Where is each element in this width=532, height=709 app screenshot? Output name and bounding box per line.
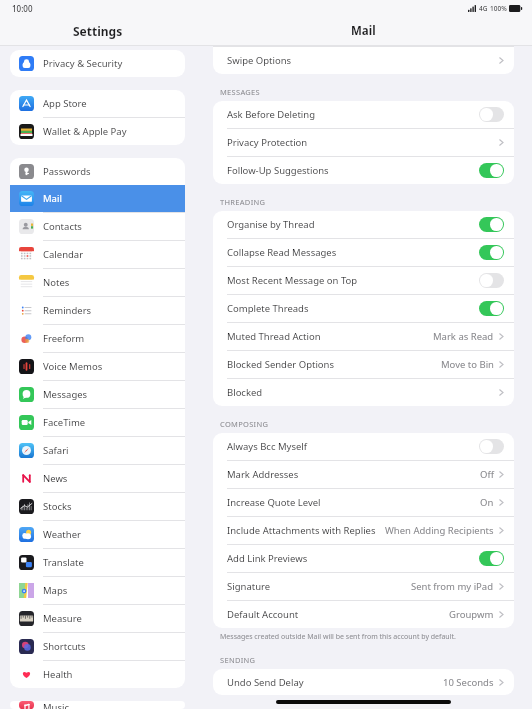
staticText: MESSAGES <box>220 87 260 97</box>
button[interactable]: Mark Addresses <box>213 461 514 488</box>
button[interactable]: News <box>10 465 185 492</box>
staticText: Passwords <box>43 165 91 178</box>
staticText: Organise by Thread <box>227 218 315 231</box>
staticText: Maps <box>43 584 68 597</box>
staticText: App Store <box>43 97 87 110</box>
button[interactable]: Reminders <box>10 297 185 324</box>
staticText: 4G <box>479 4 488 13</box>
button[interactable]: Organise by Thread <box>213 211 514 238</box>
button[interactable]: Mail <box>10 185 185 212</box>
button[interactable]: Add Link Previews <box>213 545 514 572</box>
button[interactable]: Off <box>479 273 504 288</box>
button[interactable]: Maps <box>10 577 185 604</box>
button[interactable]: Notes <box>10 269 185 296</box>
staticText: News <box>43 472 68 485</box>
staticText: Ask Before Deleting <box>227 108 315 121</box>
button[interactable]: Stocks <box>10 493 185 520</box>
staticText: Most Recent Message on Top <box>227 274 358 287</box>
button[interactable]: Collapse Read Messages <box>213 239 514 266</box>
staticText: Freeform <box>43 332 85 345</box>
button[interactable]: On <box>479 217 504 232</box>
staticText: Health <box>43 668 73 681</box>
button[interactable]: Default Account <box>213 601 514 628</box>
staticText: Voice Memos <box>43 360 103 373</box>
staticText: Wallet & Apple Pay <box>43 125 127 138</box>
button[interactable]: Wallet & Apple Pay <box>10 118 185 145</box>
staticText: Messages <box>43 388 88 401</box>
button[interactable]: Blocked <box>213 379 514 406</box>
staticText: Music <box>43 701 70 709</box>
staticText: Blocked Sender Options <box>227 358 335 371</box>
staticText: Swipe Options <box>227 54 292 67</box>
button[interactable]: On <box>479 163 504 178</box>
button[interactable]: Voice Memos <box>10 353 185 380</box>
button[interactable]: Off <box>479 107 504 122</box>
staticText: Mark Addresses <box>227 468 299 481</box>
button[interactable]: Include Attachments with Replies <box>213 517 514 544</box>
staticText: Shortcuts <box>43 640 86 653</box>
button[interactable]: Passwords <box>10 158 185 185</box>
button[interactable]: Safari <box>10 437 185 464</box>
button[interactable]: Most Recent Message on Top <box>213 267 514 294</box>
staticText: FaceTime <box>43 416 86 429</box>
staticText: Add Link Previews <box>227 552 308 565</box>
button[interactable]: Swipe Options <box>213 47 514 74</box>
button[interactable]: Shortcuts <box>10 633 185 660</box>
staticText: Settings <box>73 23 123 39</box>
button[interactable]: Signature <box>213 573 514 600</box>
button[interactable]: Freeform <box>10 325 185 352</box>
staticText: Mail <box>351 23 376 39</box>
staticText: When Adding Recipients <box>385 524 494 537</box>
button[interactable]: Contacts <box>10 213 185 240</box>
button[interactable]: On <box>479 245 504 260</box>
staticText: Collapse Read Messages <box>227 246 337 259</box>
staticText: Mail <box>43 192 62 205</box>
button[interactable]: Ask Before Deleting <box>213 101 514 128</box>
staticText: Translate <box>43 556 84 569</box>
staticText: Off <box>480 468 494 481</box>
button[interactable]: Always Bcc Myself <box>213 433 514 460</box>
staticText: Undo Send Delay <box>227 676 304 689</box>
staticText: 10:00 <box>12 3 33 14</box>
button[interactable]: Follow-Up Suggestions <box>213 157 514 184</box>
button[interactable]: Blocked Sender Options <box>213 351 514 378</box>
staticText: COMPOSING <box>220 419 269 429</box>
button[interactable]: Privacy & Security <box>10 50 185 77</box>
button[interactable]: Messages <box>10 381 185 408</box>
button[interactable]: Off <box>479 439 504 454</box>
button[interactable]: Weather <box>10 521 185 548</box>
button[interactable]: On <box>479 551 504 566</box>
staticText: Stocks <box>43 500 72 513</box>
staticText: Messages created outside Mail will be se… <box>220 632 456 642</box>
staticText: 100% <box>490 4 507 13</box>
staticText: Measure <box>43 612 82 625</box>
button[interactable]: Privacy Protection <box>213 129 514 156</box>
button[interactable]: Translate <box>10 549 185 576</box>
staticText: Complete Threads <box>227 302 309 315</box>
staticText: Sent from my iPad <box>411 580 494 593</box>
button[interactable]: Undo Send Delay <box>213 669 514 695</box>
button[interactable]: Measure <box>10 605 185 632</box>
staticText: Default Account <box>227 608 299 621</box>
button[interactable]: Increase Quote Level <box>213 489 514 516</box>
button[interactable]: Complete Threads <box>213 295 514 322</box>
staticText: Increase Quote Level <box>227 496 321 509</box>
staticText: Mark as Read <box>433 330 494 343</box>
button[interactable]: Music <box>10 701 185 709</box>
staticText: Contacts <box>43 220 82 233</box>
button[interactable]: Muted Thread Action <box>213 323 514 350</box>
staticText: Safari <box>43 444 69 457</box>
staticText: Weather <box>43 528 81 541</box>
button[interactable]: Calendar <box>10 241 185 268</box>
staticText: Always Bcc Myself <box>227 440 308 453</box>
staticText: Include Attachments with Replies <box>227 524 376 537</box>
button[interactable]: App Store <box>10 90 185 117</box>
staticText: Muted Thread Action <box>227 330 321 343</box>
staticText: Groupwm <box>449 608 494 621</box>
staticText: Notes <box>43 276 70 289</box>
button[interactable]: FaceTime <box>10 409 185 436</box>
staticText: Move to Bin <box>441 358 494 371</box>
button[interactable]: Health <box>10 661 185 688</box>
button[interactable]: On <box>479 301 504 316</box>
staticText: SENDING <box>220 655 256 665</box>
